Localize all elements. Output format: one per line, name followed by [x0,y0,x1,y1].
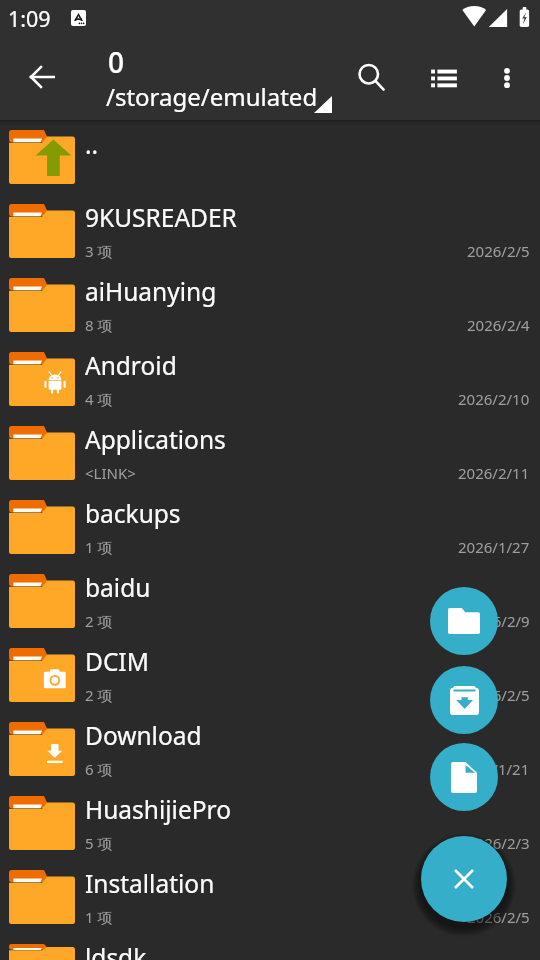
staticText: Download [85,719,202,752]
staticText: 5 项 [85,833,113,853]
button[interactable]: Search [349,55,393,99]
button[interactable]: baidu [0,564,540,638]
button[interactable]: Close menu [421,836,507,922]
staticText: DCIM [85,645,149,678]
staticText: 1 项 [85,537,113,557]
staticText: 2026/2/9 [467,611,530,631]
button[interactable]: ldsdk [0,934,540,960]
button[interactable]: Applications [0,416,540,490]
staticText: Android [85,349,177,382]
staticText: /storage/emulated [106,80,318,113]
staticText: 2026/2/5 [467,241,530,261]
button[interactable]: aiHuanying [0,268,540,342]
button[interactable]: Android [0,342,540,416]
button[interactable]: New folder [430,587,498,655]
staticText: 2026/2/3 [467,833,530,853]
button[interactable]: View mode [422,56,466,100]
staticText: ldsdk [85,941,147,960]
staticText: aiHuanying [85,275,217,308]
staticText: 2026/1/27 [458,537,530,557]
staticText: 2026/1/21 [458,759,530,779]
staticText: 1 项 [85,907,113,927]
staticText: Installation [85,867,215,900]
staticText: 2 项 [85,611,113,631]
button[interactable]: HuashijiePro [0,786,540,860]
staticText: <LINK> [85,463,136,483]
staticText: 1:09 [8,4,51,33]
staticText: 8 项 [85,315,113,335]
button[interactable]: Back [18,53,66,101]
staticText: 2026/2/5 [467,685,530,705]
button[interactable]: New file [430,743,498,811]
button[interactable]: More options [485,56,529,100]
staticText: 0 [108,43,125,81]
staticText: 3 项 [85,241,113,261]
button[interactable]: Extract archive [430,666,498,734]
staticText: .. [85,128,99,161]
staticText: Applications [85,423,226,456]
staticText: 2026/2/4 [467,315,530,335]
staticText: 9KUSREADER [85,201,237,234]
button[interactable]: Installation [0,860,540,934]
staticText: 2026/2/10 [458,389,530,409]
staticText: 6 项 [85,759,113,779]
button[interactable]: Download [0,712,540,786]
staticText: 2026/2/11 [458,463,530,483]
staticText: 4 项 [85,389,113,409]
button[interactable]: 9KUSREADER [0,194,540,268]
button[interactable]: .. [0,120,540,194]
staticText: HuashijiePro [85,793,231,826]
button[interactable]: backups [0,490,540,564]
staticText: 2 项 [85,685,113,705]
button[interactable]: DCIM [0,638,540,712]
staticText: backups [85,497,181,530]
staticText: baidu [85,571,151,604]
staticText: 2026/2/5 [467,907,530,927]
